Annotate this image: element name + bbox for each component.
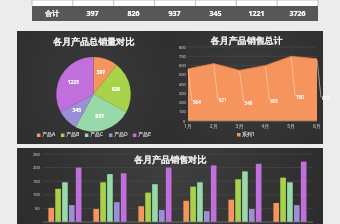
button[interactable]: 合计 — [32, 6, 72, 21]
button[interactable] — [17, 31, 170, 144]
staticText: 937 — [168, 9, 181, 19]
staticText: 397 — [86, 9, 99, 19]
staticText: 3726 — [289, 9, 306, 19]
button[interactable]: 826 — [113, 6, 154, 21]
button[interactable] — [170, 31, 323, 144]
staticText: 826 — [127, 9, 140, 19]
button[interactable]: 1221 — [236, 6, 277, 21]
button[interactable]: 345 — [195, 6, 236, 21]
button[interactable] — [17, 148, 323, 224]
staticText: 345 — [209, 9, 222, 19]
button[interactable]: 937 — [154, 6, 195, 21]
staticText: 合计 — [45, 9, 59, 18]
staticText: 1221 — [248, 9, 265, 19]
button[interactable]: 397 — [72, 6, 113, 21]
button[interactable]: 3726 — [277, 6, 318, 21]
